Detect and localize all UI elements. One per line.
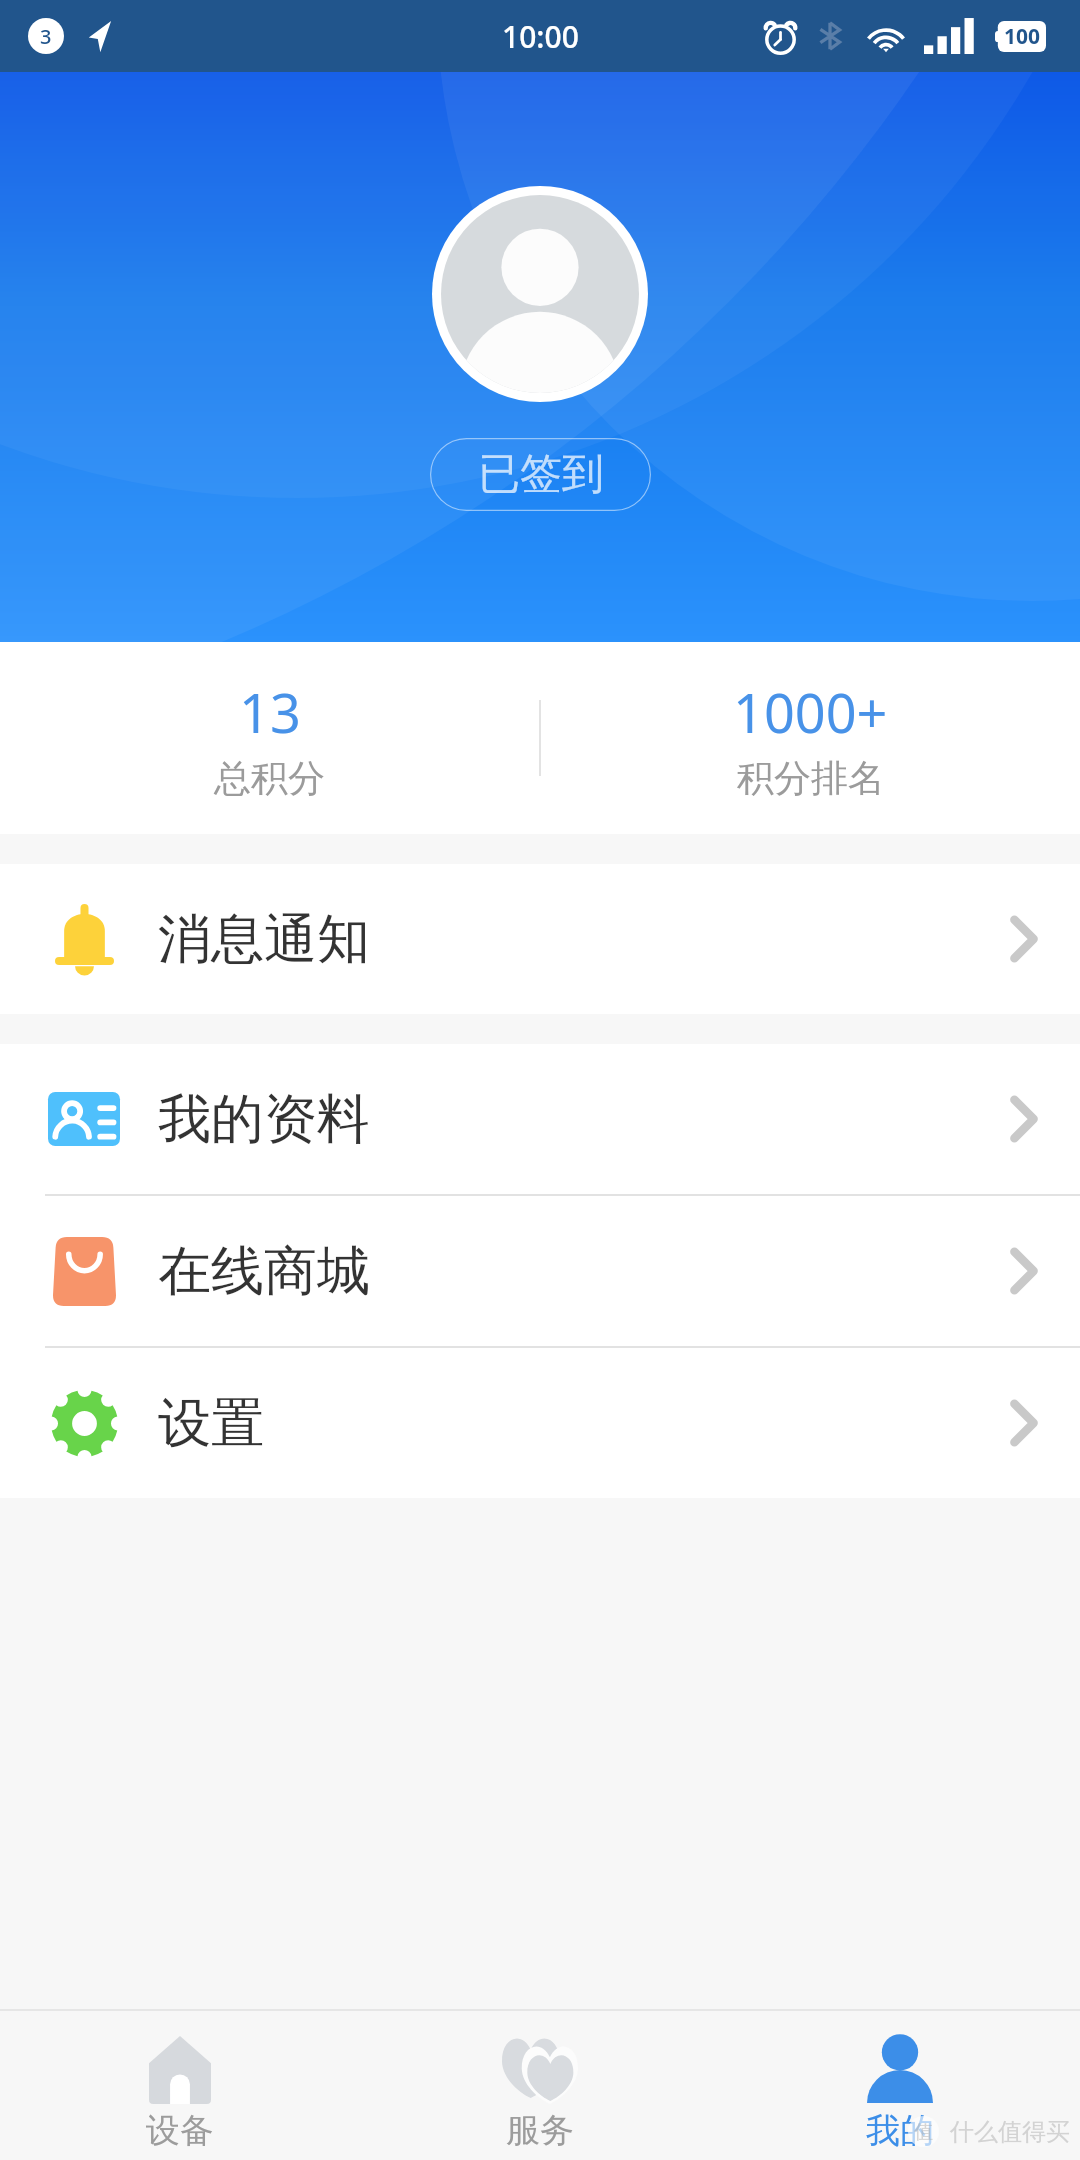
button[interactable]: 消息通知 <box>0 864 1080 1014</box>
staticText: 已签到 <box>478 448 604 501</box>
staticText: 3 <box>40 23 52 50</box>
staticText: 值 <box>914 2120 933 2144</box>
staticText: 消息通知 <box>158 906 370 973</box>
staticText: 设备 <box>146 2109 214 2152</box>
staticText: 什么值得买 <box>950 2117 1070 2147</box>
button[interactable]: 我的资料 <box>0 1044 1080 1194</box>
staticText: 我的 <box>866 2109 934 2152</box>
button[interactable]: 1000+ <box>541 642 1080 834</box>
button[interactable]: 设置 <box>0 1348 1080 1498</box>
button[interactable]: 设备 <box>0 2011 360 2160</box>
staticText: 在线商城 <box>158 1238 370 1305</box>
staticText: 总积分 <box>214 755 325 802</box>
button[interactable]: 在线商城 <box>0 1196 1080 1346</box>
staticText: 积分排名 <box>737 755 885 802</box>
staticText: 1000+ <box>733 675 888 749</box>
staticText: 我的资料 <box>158 1086 370 1153</box>
staticText: 设置 <box>158 1390 264 1457</box>
button[interactable]: 服务 <box>360 2011 720 2160</box>
button[interactable]: 13 <box>0 642 539 834</box>
staticText: 10:00 <box>502 16 579 57</box>
button[interactable]: 我的 <box>720 2011 1080 2160</box>
staticText: 100 <box>1004 22 1041 51</box>
staticText: 服务 <box>506 2109 574 2152</box>
button[interactable]: 已签到 <box>430 438 651 511</box>
staticText: 13 <box>239 675 301 749</box>
